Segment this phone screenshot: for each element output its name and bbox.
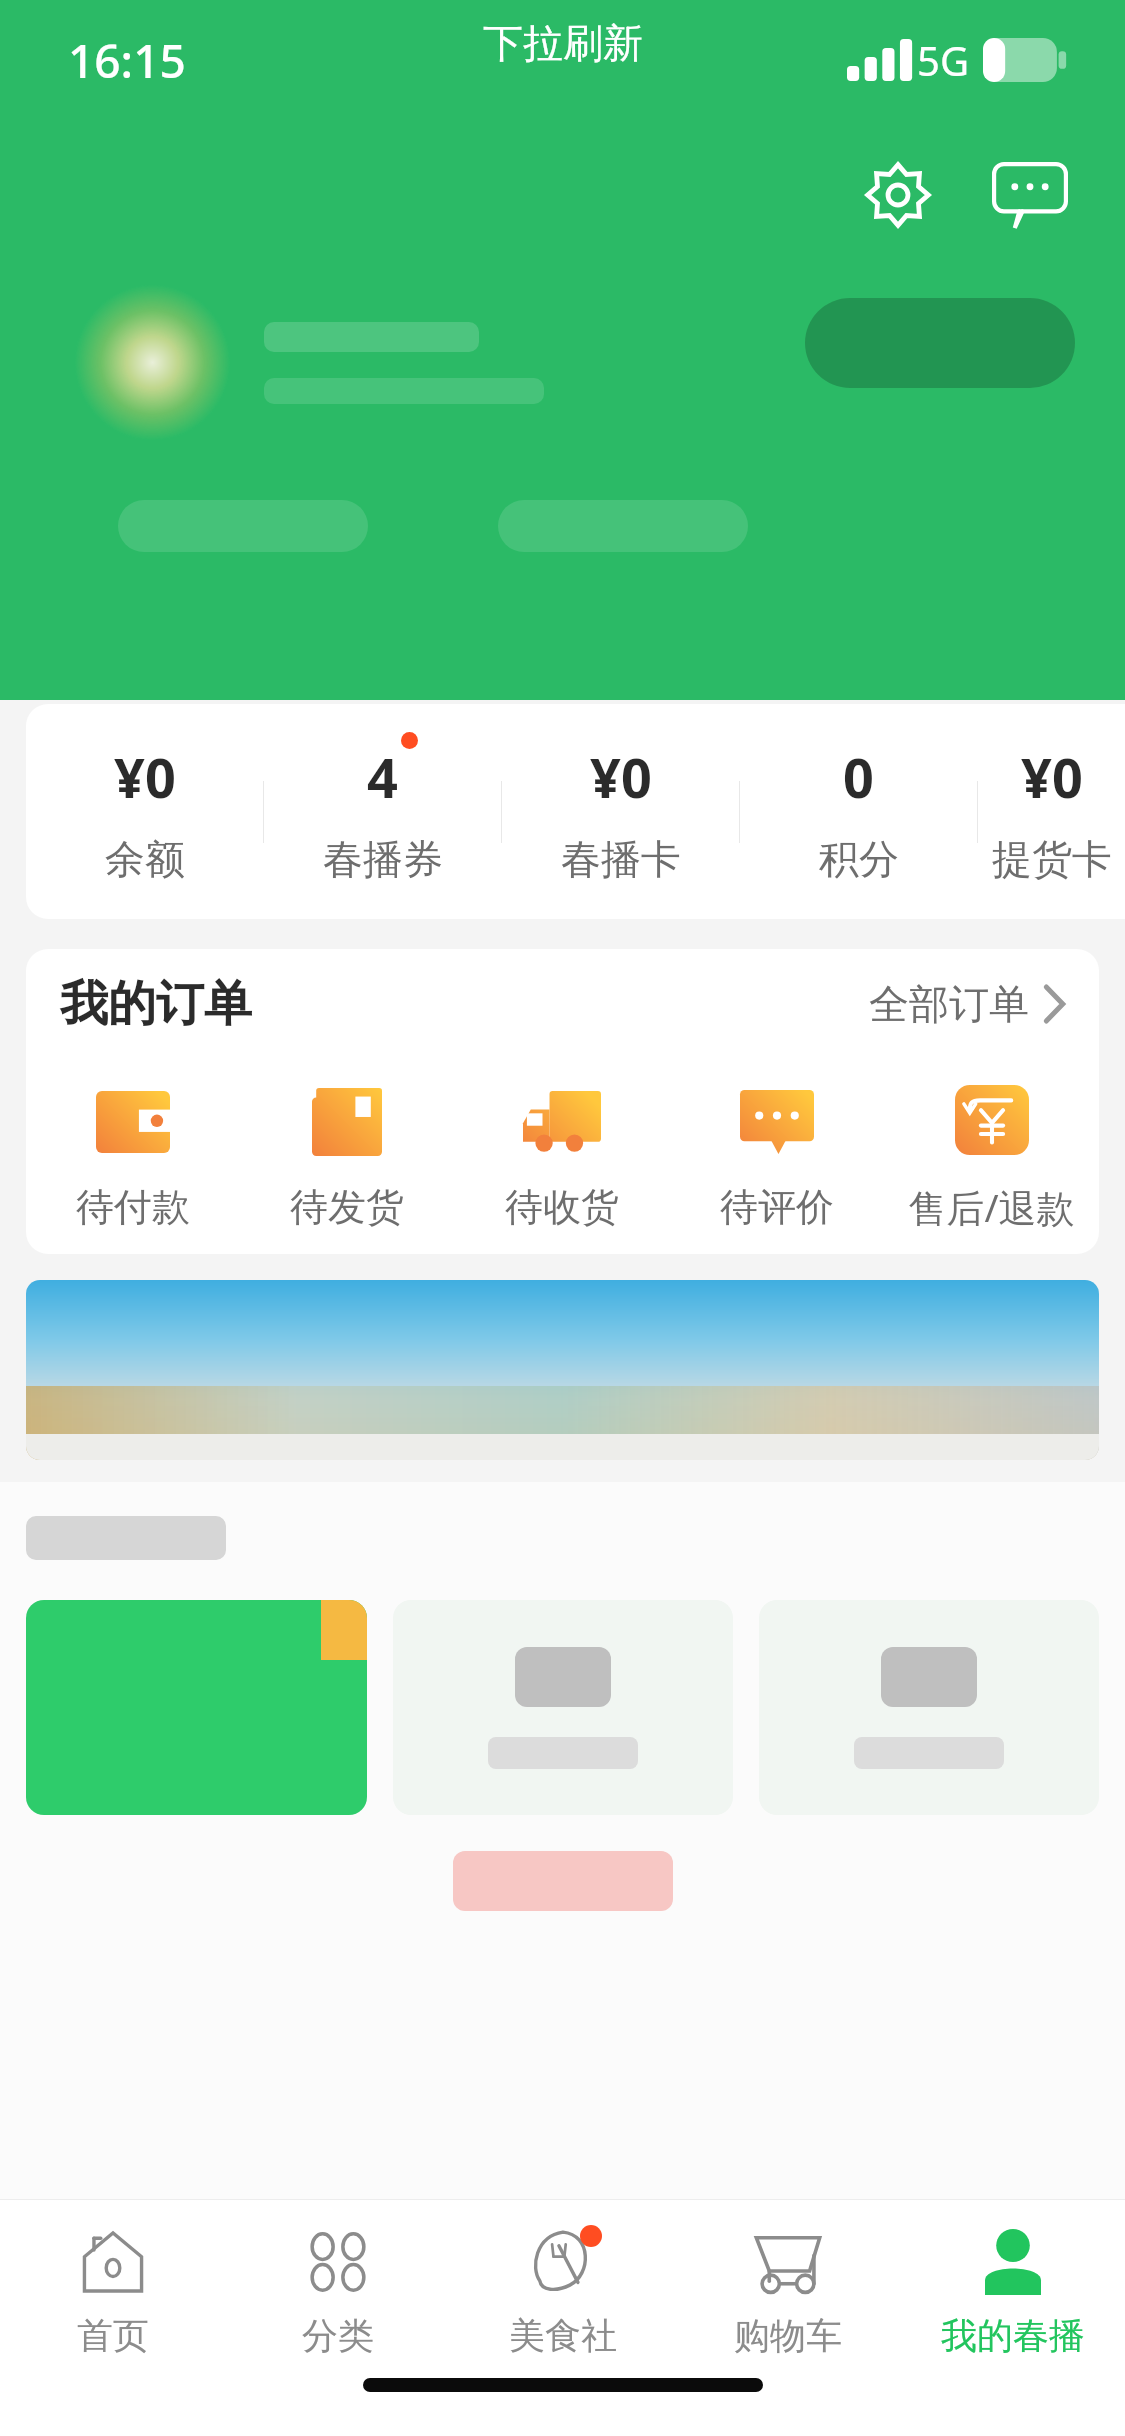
staticText: 售后/退款 [908, 1181, 1075, 1233]
button[interactable]: 售后/退款 [884, 1059, 1099, 1254]
button[interactable] [805, 298, 1075, 388]
button[interactable] [26, 1600, 367, 1815]
button[interactable]: 美食社 [450, 2200, 675, 2378]
button[interactable]: 分类 [225, 2200, 450, 2378]
button[interactable]: ¥0 [502, 704, 739, 919]
button[interactable] [393, 1600, 733, 1815]
staticText: 全部订单 [869, 979, 1029, 1029]
staticText: 我的春播 [941, 2313, 1085, 2358]
button[interactable]: 待收货 [454, 1059, 669, 1254]
button[interactable]: 消息 [985, 150, 1075, 240]
button[interactable] [759, 1600, 1099, 1815]
staticText: 春播卡 [561, 834, 681, 884]
staticText: 购物车 [734, 2313, 842, 2358]
staticText: 美食社 [509, 2313, 617, 2358]
staticText: 16:15 [68, 29, 186, 92]
button[interactable]: 待发货 [240, 1059, 454, 1254]
staticText: 4 [367, 740, 398, 814]
button[interactable] [26, 1280, 1099, 1460]
button[interactable]: 首页 [0, 2200, 225, 2378]
staticText: 提货卡 [992, 834, 1112, 884]
staticText: 待评价 [720, 1183, 834, 1231]
staticText: 0 [843, 740, 874, 814]
staticText: 余额 [105, 834, 185, 884]
staticText: 待付款 [76, 1183, 190, 1231]
staticText: 待发货 [290, 1183, 404, 1231]
staticText: 我的订单 [60, 974, 252, 1034]
button[interactable]: 设置 [853, 150, 943, 240]
button[interactable]: ¥0 [978, 704, 1125, 919]
button[interactable]: 4 [264, 704, 501, 919]
staticText: 待收货 [505, 1183, 619, 1231]
button[interactable]: ¥0 [26, 704, 263, 919]
staticText: ¥0 [114, 740, 176, 814]
staticText: ¥0 [1021, 740, 1083, 814]
staticText: 春播券 [323, 834, 443, 884]
button[interactable]: 待评价 [669, 1059, 884, 1254]
button[interactable]: 待付款 [26, 1059, 240, 1254]
staticText: 下拉刷新 [483, 18, 643, 68]
button[interactable]: 我的春播 [900, 2200, 1125, 2378]
staticText: 积分 [819, 834, 899, 884]
staticText: 分类 [302, 2313, 374, 2358]
staticText: 5G [917, 33, 969, 87]
button[interactable]: 0 [740, 704, 977, 919]
button[interactable]: 购物车 [675, 2200, 900, 2378]
button[interactable] [75, 285, 230, 440]
staticText: ¥0 [590, 740, 652, 814]
staticText: 首页 [77, 2313, 149, 2358]
button[interactable]: 全部订单 [869, 979, 1065, 1029]
